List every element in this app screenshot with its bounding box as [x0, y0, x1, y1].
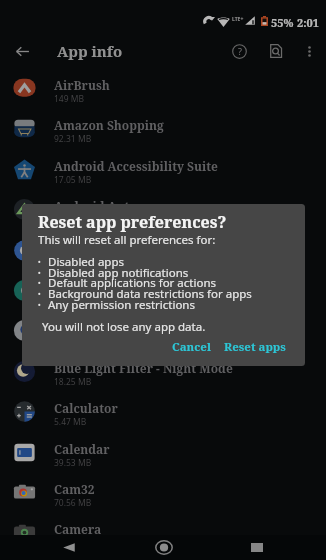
- staticText: Cancel: [172, 339, 211, 355]
- button[interactable]: Help: [225, 34, 254, 68]
- staticText: Reset app preferences?: [38, 211, 227, 233]
- staticText: Disabled apps: [48, 254, 125, 270]
- staticText: Any permission restrictions: [48, 297, 195, 313]
- button[interactable]: Recent apps: [241, 535, 272, 560]
- staticText: 39.53 MB: [54, 457, 92, 469]
- staticText: 86.40 MB: [54, 295, 92, 307]
- button[interactable]: Calculator: [0, 391, 326, 431]
- button[interactable]: Navigate up: [8, 37, 36, 65]
- button[interactable]: Cancel: [166, 335, 216, 359]
- button[interactable]: AirBrush: [0, 68, 326, 108]
- staticText: Disabled app notifications: [48, 265, 189, 281]
- staticText: 5.47 MB: [54, 416, 87, 428]
- staticText: 2:01: [297, 15, 319, 30]
- staticText: 1.64 MB: [54, 537, 87, 549]
- button[interactable]: Back: [53, 535, 85, 560]
- staticText: Amazon Shopping: [54, 117, 164, 133]
- staticText: You will not lose any app data.: [42, 319, 206, 335]
- staticText: Background data restrictions for apps: [48, 286, 252, 302]
- staticText: 70.56 MB: [54, 497, 92, 509]
- button[interactable]: Reset apps: [221, 335, 289, 359]
- button[interactable]: Android Accessibility Suite: [0, 149, 326, 189]
- staticText: 17.05 MB: [54, 174, 92, 186]
- button[interactable]: Amazon Shopping: [0, 108, 326, 148]
- staticText: 55%: [271, 15, 294, 30]
- staticText: Calculator: [54, 400, 118, 416]
- staticText: Android Accessibility Suite: [54, 158, 218, 174]
- staticText: Camera: [54, 521, 102, 537]
- staticText: Calendar: [54, 441, 110, 457]
- staticText: 149 MB: [54, 93, 85, 105]
- button[interactable]: Android System WebView: [0, 230, 326, 270]
- button[interactable]: Calendar: [0, 432, 326, 472]
- button[interactable]: Bixby Vision: [0, 310, 326, 350]
- button[interactable]: Cam32: [0, 472, 326, 512]
- button[interactable]: Home: [148, 535, 179, 560]
- staticText: 18.25 MB: [54, 376, 92, 388]
- staticText: Blue Light Filter - Night Mode: [54, 360, 233, 376]
- staticText: Assistant: [54, 279, 110, 295]
- staticText: Android System WebView: [54, 239, 210, 255]
- button[interactable]: Android Auto: [0, 189, 326, 229]
- staticText: 92.31 MB: [54, 133, 92, 145]
- button[interactable]: Blue Light Filter - Night Mode: [0, 351, 326, 391]
- staticText: ?: [238, 45, 242, 57]
- staticText: Cam32: [54, 481, 95, 497]
- staticText: Android Auto: [54, 198, 137, 214]
- staticText: Reset apps: [224, 339, 286, 355]
- staticText: Default applications for actions: [48, 275, 217, 291]
- staticText: AirBrush: [54, 77, 110, 93]
- staticText: This will reset all preferences for:: [38, 232, 216, 248]
- button[interactable]: Search apps: [262, 34, 290, 68]
- staticText: LTE+: [232, 16, 244, 23]
- button[interactable]: Camera: [0, 512, 326, 552]
- button[interactable]: Assistant: [0, 270, 326, 310]
- staticText: App info: [57, 41, 123, 61]
- staticText: Bixby Vision: [54, 319, 130, 335]
- button[interactable]: More options: [297, 34, 321, 68]
- staticText: 52.13 MB: [54, 214, 92, 226]
- staticText: 141 MB: [54, 255, 85, 267]
